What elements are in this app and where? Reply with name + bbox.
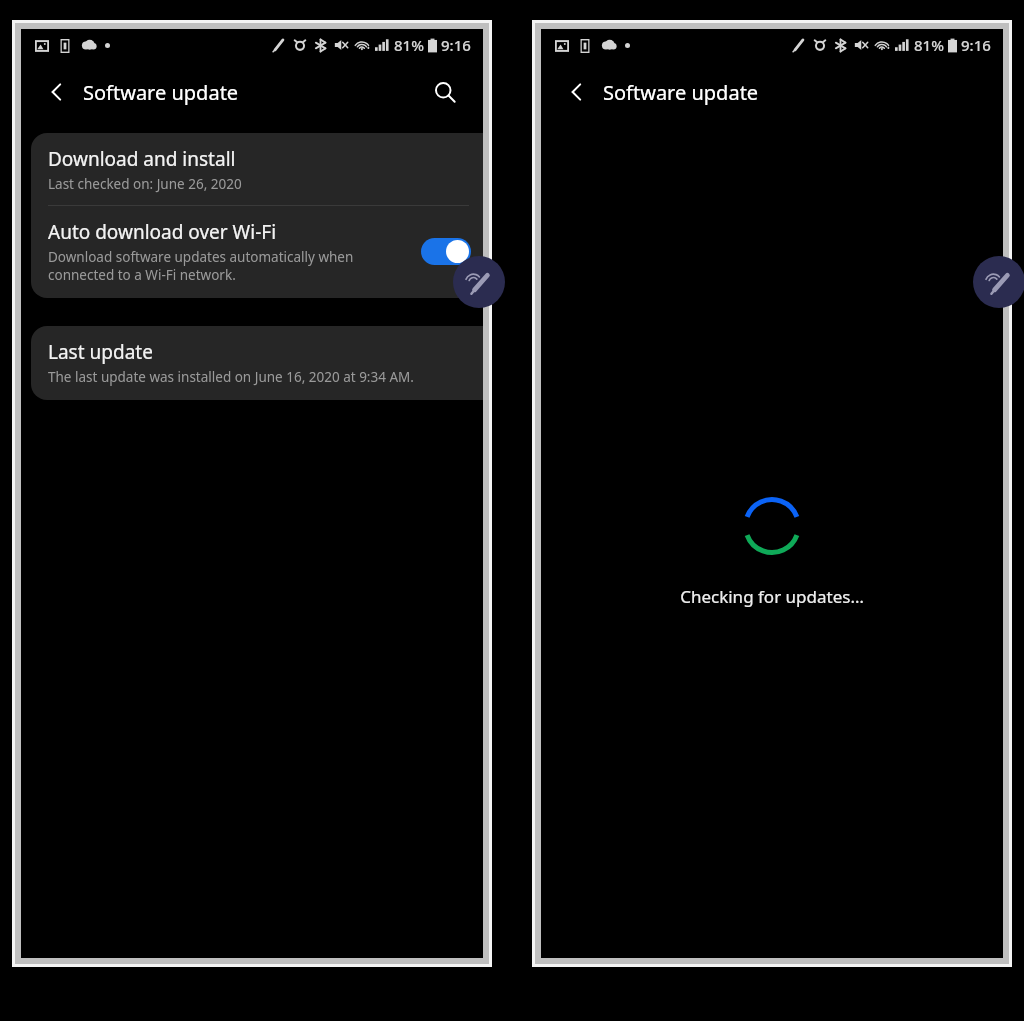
- staticText: 9:16: [961, 35, 991, 55]
- button[interactable]: Pen menu: [973, 256, 1024, 308]
- staticText: Software update: [603, 79, 759, 106]
- button[interactable]: Back: [555, 70, 599, 114]
- staticText: Software update: [83, 79, 239, 106]
- button[interactable]: Search: [423, 70, 467, 114]
- staticText: 9:16: [441, 35, 471, 55]
- staticText: Last checked on: June 26, 2020: [48, 175, 242, 193]
- staticText: Last update: [48, 339, 153, 365]
- staticText: Auto download over Wi-Fi: [48, 219, 277, 245]
- staticText: Download software updates automatically …: [48, 248, 354, 284]
- staticText: Download and install: [48, 146, 236, 172]
- button[interactable]: Last update: [31, 326, 483, 400]
- button[interactable]: Pen menu: [453, 256, 505, 308]
- staticText: The last update was installed on June 16…: [48, 368, 414, 386]
- staticText: 81%: [914, 35, 944, 55]
- button[interactable]: Download and install: [31, 133, 483, 205]
- staticText: Checking for updates…: [680, 585, 864, 608]
- button[interactable]: Auto download over Wi-Fi: [31, 206, 483, 298]
- staticText: 81%: [394, 35, 424, 55]
- button[interactable]: [421, 238, 471, 265]
- button[interactable]: Back: [35, 70, 79, 114]
